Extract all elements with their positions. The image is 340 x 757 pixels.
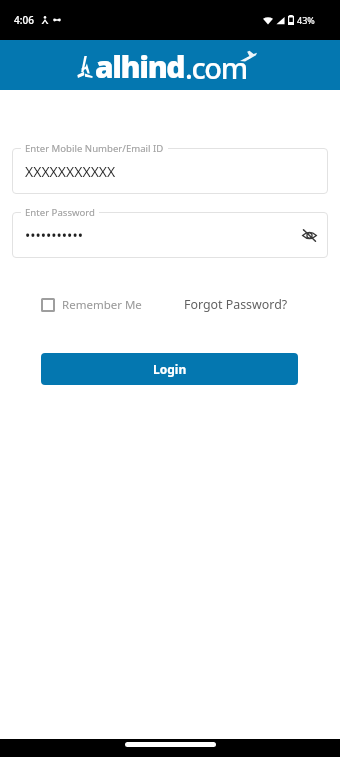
staticText: Enter Mobile Number/Email ID (25, 142, 164, 155)
staticText: XXXXXXXXXXX (25, 162, 116, 181)
button[interactable]: Remember Me (41, 297, 142, 313)
staticText: Login (153, 361, 187, 377)
button[interactable]: Login (41, 353, 298, 385)
staticText: .com (185, 48, 247, 87)
staticText: Forgot Password? (184, 296, 288, 313)
staticText: ••••••••••• (25, 226, 83, 245)
staticText: alhind (95, 46, 185, 87)
staticText: 4:06 (14, 13, 34, 27)
button[interactable]: Forgot Password? (184, 296, 288, 313)
button[interactable]: Toggle password visibility (298, 224, 320, 246)
staticText: 43% (297, 14, 315, 26)
staticText: Remember Me (62, 297, 142, 313)
staticText: Enter Password (25, 206, 95, 219)
